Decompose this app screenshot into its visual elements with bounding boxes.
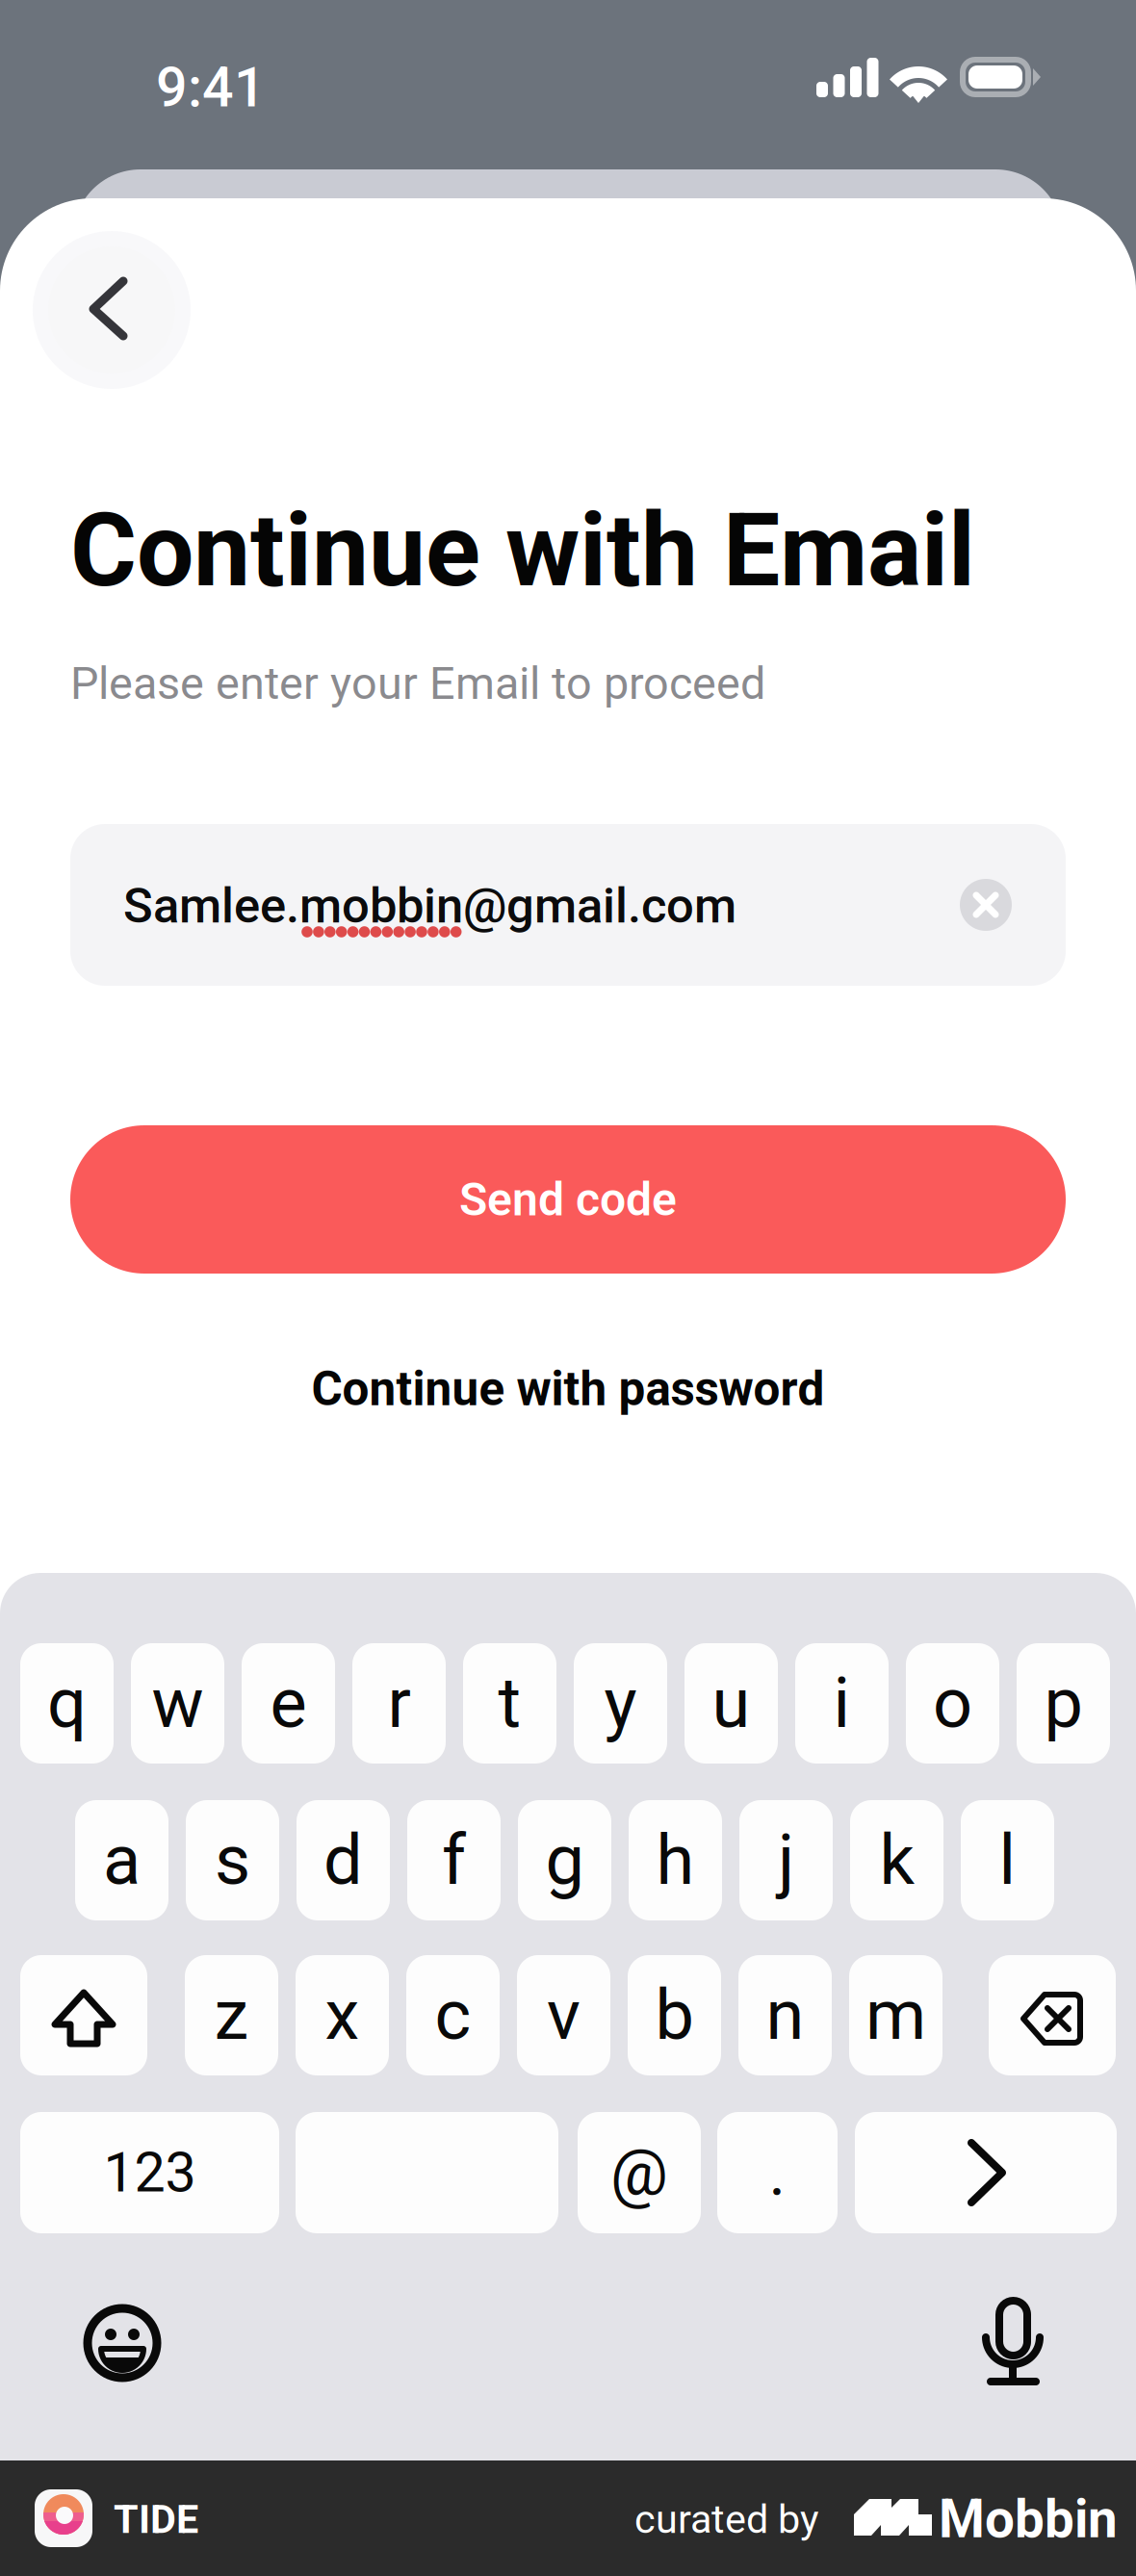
staticText: y — [604, 1663, 637, 1744]
button[interactable]: d — [297, 1800, 390, 1920]
staticText: d — [323, 1820, 363, 1901]
button[interactable]: Send code — [70, 1125, 1066, 1274]
button[interactable]: g — [518, 1800, 611, 1920]
staticText: m — [865, 1975, 926, 2056]
button[interactable]: l — [961, 1800, 1054, 1920]
staticText: Please enter your Email to proceed — [70, 657, 765, 710]
staticText: n — [766, 1975, 804, 2056]
staticText: v — [547, 1975, 581, 2056]
staticText: s — [215, 1820, 250, 1901]
staticText: Continue with password — [311, 1361, 825, 1417]
button[interactable]: Space — [296, 2112, 558, 2233]
button[interactable]: r — [352, 1643, 446, 1764]
button[interactable]: Go — [855, 2112, 1117, 2233]
staticText: g — [545, 1820, 584, 1901]
staticText: c — [435, 1975, 471, 2056]
button[interactable]: Continue with password — [221, 1341, 915, 1437]
button[interactable]: f — [407, 1800, 501, 1920]
staticText: @ — [610, 2135, 668, 2210]
button[interactable]: Clear text — [960, 879, 1012, 931]
button[interactable]: q — [20, 1643, 114, 1764]
button[interactable]: k — [850, 1800, 943, 1920]
button[interactable]: Back — [48, 248, 171, 372]
button[interactable]: m — [849, 1955, 942, 2075]
button[interactable]: 123 — [20, 2112, 279, 2233]
staticText: r — [387, 1663, 411, 1744]
button[interactable]: x — [296, 1955, 389, 2075]
staticText: curated by — [634, 2496, 819, 2543]
staticText: t — [498, 1663, 521, 1744]
button[interactable]: c — [406, 1955, 500, 2075]
staticText: b — [655, 1975, 694, 2056]
staticText: . — [769, 2135, 786, 2210]
button[interactable]: h — [629, 1800, 722, 1920]
staticText: x — [325, 1975, 360, 2056]
staticText: o — [933, 1663, 972, 1744]
button[interactable]: o — [906, 1643, 999, 1764]
button[interactable]: e — [242, 1643, 335, 1764]
staticText: p — [1044, 1663, 1083, 1744]
staticText: j — [778, 1820, 794, 1901]
button[interactable]: Dictate — [960, 2285, 1066, 2401]
staticText: 123 — [103, 2140, 196, 2205]
button[interactable]: w — [131, 1643, 224, 1764]
button[interactable]: j — [739, 1800, 833, 1920]
button[interactable]: v — [517, 1955, 610, 2075]
staticText: q — [47, 1663, 87, 1744]
staticText: TIDE — [114, 2496, 198, 2543]
button[interactable]: z — [185, 1955, 278, 2075]
button[interactable]: n — [738, 1955, 832, 2075]
button[interactable]: Emoji keyboard — [69, 2290, 175, 2396]
staticText: 9:41 — [156, 55, 266, 120]
staticText: f — [442, 1820, 466, 1901]
staticText: k — [879, 1820, 914, 1901]
button[interactable]: t — [463, 1643, 556, 1764]
button[interactable]: p — [1017, 1643, 1110, 1764]
staticText: Send code — [459, 1172, 677, 1226]
staticText: Continue with Email — [70, 491, 975, 610]
staticText: Samlee.mobbin@gmail.com — [123, 877, 736, 934]
button[interactable]: a — [75, 1800, 168, 1920]
button[interactable]: . — [717, 2112, 838, 2233]
button[interactable]: Shift — [20, 1955, 147, 2075]
staticText: w — [152, 1663, 204, 1744]
staticText: h — [656, 1820, 695, 1901]
button[interactable]: s — [186, 1800, 279, 1920]
button[interactable]: y — [574, 1643, 667, 1764]
button[interactable]: @ — [578, 2112, 701, 2233]
button[interactable]: b — [628, 1955, 721, 2075]
button[interactable]: Backspace — [989, 1955, 1116, 2075]
staticText: z — [214, 1975, 249, 2056]
staticText: l — [999, 1820, 1016, 1901]
staticText: i — [833, 1663, 851, 1744]
staticText: e — [270, 1663, 307, 1744]
button[interactable]: i — [795, 1643, 889, 1764]
button[interactable]: u — [684, 1643, 778, 1764]
staticText: Mobbin — [939, 2488, 1118, 2550]
staticText: a — [103, 1820, 141, 1901]
staticText: u — [712, 1663, 750, 1744]
